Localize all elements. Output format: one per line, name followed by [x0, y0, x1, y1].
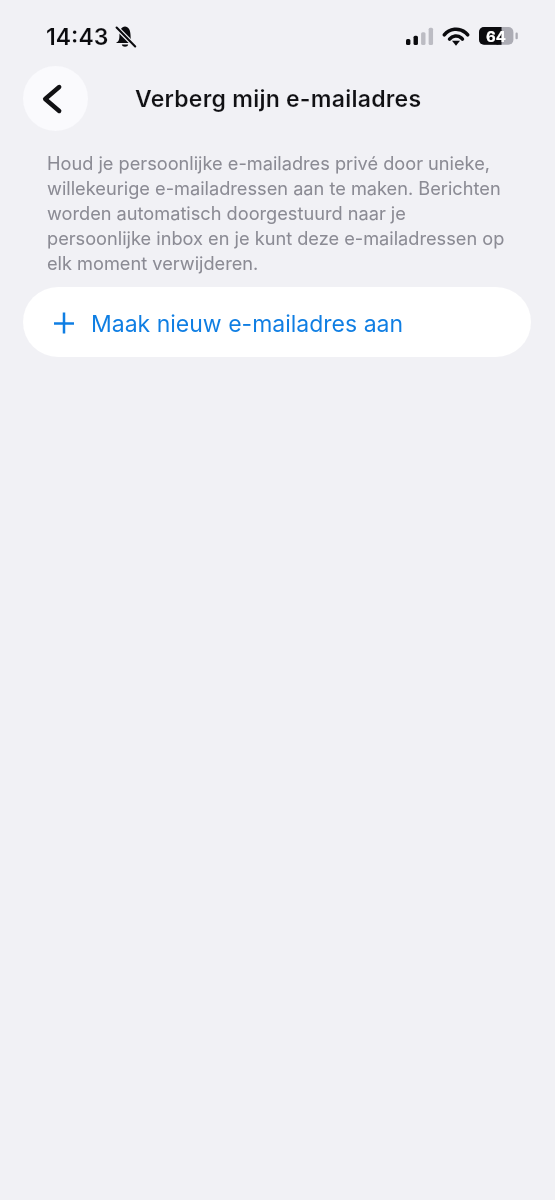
staticText: 64	[486, 27, 506, 45]
button[interactable]: Terug	[23, 66, 88, 131]
button[interactable]: Maak nieuw e-mailadres aan	[23, 287, 531, 357]
staticText: Maak nieuw e-mailadres aan	[91, 310, 404, 338]
staticText: Houd je persoonlijke e-mailadres privé d…	[47, 150, 507, 275]
staticText: Verberg mijn e-mailadres	[135, 85, 422, 113]
staticText: 14:43	[46, 23, 109, 51]
